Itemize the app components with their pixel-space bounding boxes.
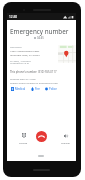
staticText: Speaker [61, 141, 71, 144]
staticText: Police [49, 87, 57, 91]
staticText: LOCATION [10, 45, 22, 48]
staticText: 04:45 [37, 36, 44, 40]
staticText: Mountain View, CA 94043 [10, 53, 40, 56]
staticText: Silently share location & emergency type [10, 81, 58, 84]
button[interactable]: Map [58, 45, 76, 63]
staticText: Medical [15, 87, 26, 91]
staticText: 37.4220, -122.0841 [10, 59, 32, 62]
button[interactable]: Keypad [18, 133, 29, 144]
button[interactable]: Speaker [60, 134, 71, 144]
staticText: This phone's number: (310) 555-0117 [10, 70, 57, 74]
staticText: 1600 Amphitheatre Pkwy [10, 49, 40, 52]
staticText: Fire [35, 87, 40, 91]
staticText: Keypad [19, 141, 28, 144]
staticText: Accurate to 10 m [10, 61, 29, 64]
button[interactable]: End call [36, 131, 47, 142]
staticText: Emergency number [10, 27, 69, 36]
button[interactable]: Fire [31, 87, 40, 91]
staticText: 12:30 [9, 15, 18, 19]
button[interactable]: Medical [11, 87, 26, 91]
staticText: Sharing with 911 now [10, 77, 36, 80]
button[interactable]: Police [45, 87, 57, 91]
